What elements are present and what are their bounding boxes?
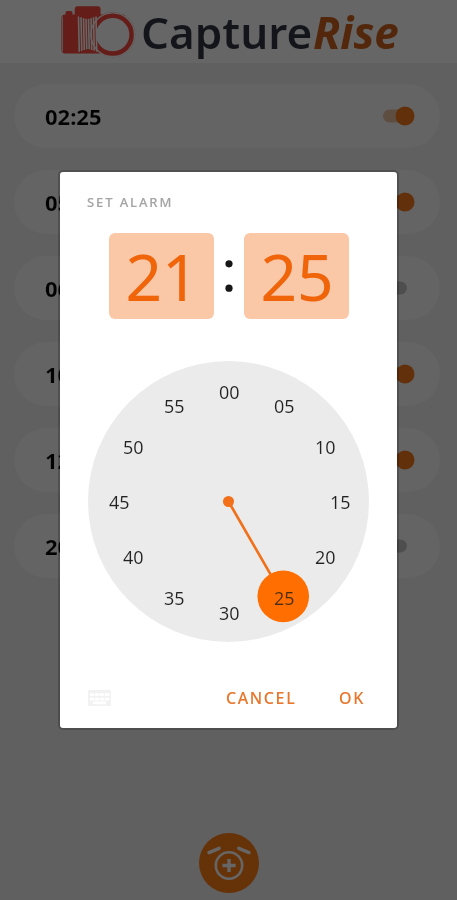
staticText: SET ALARM: [87, 193, 174, 211]
button[interactable]: Minute 25: [267, 581, 301, 615]
button[interactable]: Toggle alarm 05:30: [383, 188, 417, 216]
button[interactable]: 12:45: [14, 428, 440, 492]
button[interactable]: 05:30: [14, 170, 440, 234]
button[interactable]: [0, 0, 457, 900]
button[interactable]: Minute 05: [267, 389, 301, 423]
button[interactable]: OK: [331, 679, 373, 717]
button[interactable]: Switch to keyboard input: [83, 682, 115, 714]
staticText: 25: [274, 586, 295, 611]
staticText: Rise: [313, 2, 399, 62]
staticText: 05:30: [45, 187, 102, 217]
staticText: 25: [260, 233, 334, 319]
staticText: 00: [219, 380, 240, 405]
button[interactable]: Toggle alarm 12:45: [383, 446, 417, 474]
button[interactable]: 21: [109, 233, 214, 319]
staticText: OK: [339, 687, 365, 709]
staticText: 20: [315, 545, 336, 570]
staticText: 06:00: [45, 273, 102, 303]
staticText: 35: [164, 586, 185, 611]
staticText: 02:25: [45, 101, 102, 131]
staticText: 30: [219, 601, 240, 626]
button[interactable]: CANCEL: [218, 679, 305, 717]
staticText: Capture: [141, 2, 313, 62]
button[interactable]: 10:15: [14, 342, 440, 406]
button[interactable]: Minute 40: [116, 540, 150, 574]
button[interactable]: Minute 10: [308, 430, 342, 464]
button[interactable]: Toggle alarm 02:25: [383, 102, 417, 130]
button[interactable]: Minute 15: [323, 485, 357, 519]
button[interactable]: Minute 50: [116, 430, 150, 464]
staticText: 10:15: [45, 359, 102, 389]
staticText: 55: [164, 394, 185, 419]
button[interactable]: Add alarm: [199, 833, 259, 893]
staticText: 15: [330, 490, 351, 515]
button[interactable]: 02:25: [14, 84, 440, 148]
button[interactable]: Minute 00: [212, 375, 246, 409]
staticText: 05: [274, 394, 295, 419]
button[interactable]: Toggle alarm 10:15: [383, 360, 417, 388]
button[interactable]: Minute 55: [157, 389, 191, 423]
staticText: 40: [123, 545, 144, 570]
staticText: 50: [123, 435, 144, 460]
button[interactable]: Toggle alarm 06:00: [383, 274, 417, 302]
button[interactable]: 20:30: [14, 514, 440, 578]
staticText: 45: [109, 490, 130, 515]
staticText: 21: [125, 233, 199, 319]
staticText: 10: [315, 435, 336, 460]
staticText: 12:45: [45, 445, 102, 475]
button[interactable]: Toggle alarm 20:30: [383, 532, 417, 560]
staticText: CANCEL: [226, 687, 297, 709]
staticText: 20:30: [45, 531, 102, 561]
button[interactable]: 25: [244, 233, 349, 319]
button[interactable]: Minute 45: [102, 485, 136, 519]
button[interactable]: 06:00: [14, 256, 440, 320]
button[interactable]: Minute 20: [308, 540, 342, 574]
button[interactable]: Minute 30: [212, 596, 246, 630]
button[interactable]: Minute 35: [157, 581, 191, 615]
